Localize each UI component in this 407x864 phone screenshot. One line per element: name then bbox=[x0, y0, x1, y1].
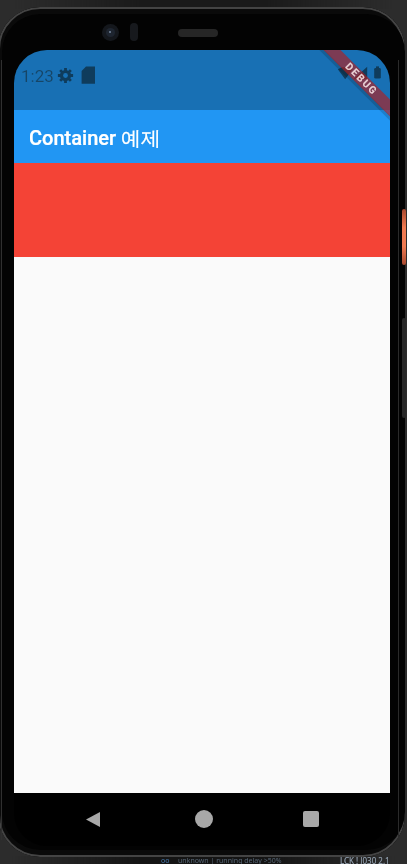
button[interactable] bbox=[190, 805, 218, 833]
button[interactable] bbox=[297, 805, 325, 833]
staticText: 1:23 bbox=[21, 66, 54, 86]
staticText: unknown | running delay >50% bbox=[178, 856, 282, 864]
staticText: LCK ! J030 2.1 bbox=[340, 855, 390, 864]
staticText: oo bbox=[161, 856, 170, 864]
button[interactable]: Container 예제 bbox=[14, 110, 390, 163]
staticText: Container 예제 bbox=[29, 126, 162, 151]
staticText: DEBUG bbox=[343, 61, 380, 98]
button[interactable] bbox=[79, 805, 107, 833]
